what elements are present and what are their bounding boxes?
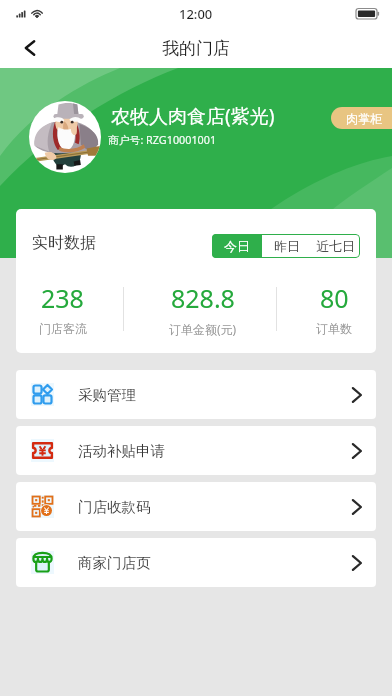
staticText: 商户号: RZG10001001 bbox=[108, 132, 217, 147]
staticText: 农牧人肉食店(紫光) bbox=[111, 103, 275, 129]
button[interactable]: 肉掌柜 bbox=[331, 107, 392, 129]
staticText: 今日 bbox=[224, 238, 250, 254]
staticText: 我的门店 bbox=[162, 38, 230, 59]
staticText: 828.8 bbox=[171, 281, 235, 315]
staticText: 订单金额(元) bbox=[169, 321, 237, 337]
button[interactable]: 采购管理 bbox=[16, 370, 376, 419]
staticText: 门店客流 bbox=[39, 321, 87, 336]
button[interactable]: Back bbox=[8, 28, 48, 68]
button[interactable]: 活动补贴申请 bbox=[16, 426, 376, 475]
button[interactable]: 门店收款码 bbox=[16, 482, 376, 531]
staticText: 实时数据 bbox=[32, 233, 96, 253]
staticText: 近七日 bbox=[316, 238, 355, 254]
staticText: 80 bbox=[320, 281, 349, 315]
staticText: 采购管理 bbox=[78, 386, 136, 404]
staticText: 订单数 bbox=[316, 321, 352, 336]
staticText: 活动补贴申请 bbox=[78, 442, 165, 460]
staticText: 肉掌柜 bbox=[346, 111, 382, 126]
button[interactable]: 近七日 bbox=[311, 234, 360, 258]
button[interactable]: 今日 bbox=[212, 234, 262, 258]
button[interactable]: 昨日 bbox=[262, 234, 311, 258]
staticText: 门店收款码 bbox=[78, 498, 151, 516]
staticText: 昨日 bbox=[274, 238, 300, 254]
staticText: 12:00 bbox=[179, 5, 213, 23]
button[interactable]: 商家门店页 bbox=[16, 538, 376, 587]
staticText: 238 bbox=[41, 281, 84, 315]
staticText: 商家门店页 bbox=[78, 554, 151, 572]
